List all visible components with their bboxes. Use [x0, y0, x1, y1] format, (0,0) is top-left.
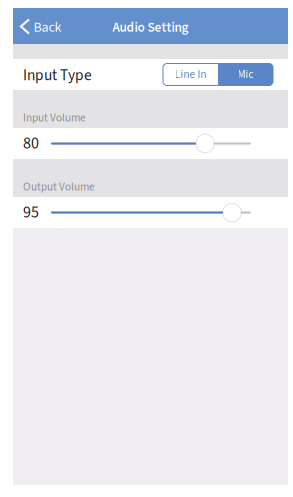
staticText: Audio Setting — [112, 18, 188, 37]
button[interactable]: Line In — [163, 63, 218, 85]
staticText: Input Type — [23, 65, 92, 86]
staticText: Input Volume — [23, 110, 86, 126]
button[interactable]: Mic — [218, 63, 273, 85]
staticText: Mic — [237, 66, 253, 82]
staticText: Back — [33, 17, 61, 37]
staticText: 95 — [23, 201, 39, 224]
staticText: 80 — [23, 132, 39, 155]
button[interactable]: Back — [13, 8, 69, 44]
staticText: Output Volume — [23, 179, 95, 195]
staticText: Line In — [174, 66, 206, 82]
